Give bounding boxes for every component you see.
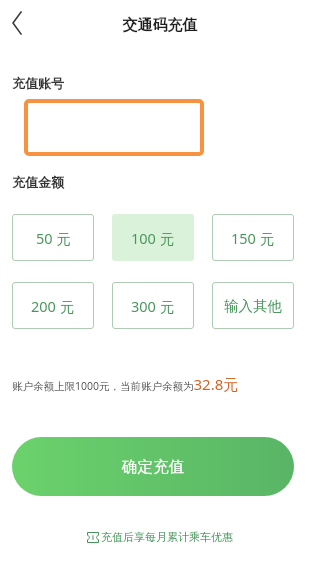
staticText: 200 元 [31, 296, 75, 316]
staticText: 交通码充值 [0, 16, 320, 35]
button[interactable]: 200 元 [12, 282, 94, 329]
staticText: 300 元 [131, 296, 175, 316]
button[interactable]: 充值后享每月累计乘车优惠 [87, 530, 233, 544]
staticText: 50 元 [36, 228, 71, 248]
staticText: 充值账号 [12, 75, 64, 91]
button[interactable]: 150 元 [212, 214, 294, 261]
staticText: 输入其他 [224, 297, 282, 315]
button[interactable]: 50 元 [12, 214, 94, 261]
button[interactable]: 输入其他 [212, 282, 294, 329]
button[interactable]: 100 元 [112, 214, 194, 261]
staticText: 确定充值 [122, 457, 184, 477]
staticText: 100 元 [131, 228, 175, 248]
button[interactable]: Back [1, 7, 33, 39]
staticText: 充值后享每月累计乘车优惠 [101, 530, 233, 544]
staticText: 150 元 [231, 228, 275, 248]
button[interactable]: 300 元 [112, 282, 194, 329]
staticText: 账户余额上限1000元，当前账户余额为32.8元 [12, 374, 239, 394]
button[interactable] [24, 99, 204, 156]
staticText: 充值金额 [12, 174, 64, 190]
button[interactable]: 确定充值 [12, 437, 294, 496]
